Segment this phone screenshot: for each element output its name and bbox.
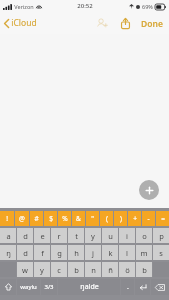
button[interactable]: p [153,228,169,243]
staticText: Verizon [14,3,34,10]
button[interactable]: + [128,211,141,226]
button[interactable]: ö [119,262,135,277]
button[interactable]: waylu [17,279,40,295]
button[interactable]: ! [0,211,14,226]
staticText: ñ [108,265,113,275]
button[interactable]: s [153,245,169,260]
button[interactable]: y [34,262,50,277]
button[interactable]: ) [114,211,127,226]
staticText: % [62,214,68,223]
button[interactable]: Shift [0,279,16,295]
staticText: 20:52 [77,2,93,10]
staticText: r [57,231,61,241]
staticText: w [22,265,28,275]
button[interactable]: m [136,245,152,260]
button[interactable]: = [156,211,169,226]
staticText: d [23,248,28,258]
staticText: 3/3 [44,283,54,291]
button[interactable]: & [72,211,85,226]
button[interactable]: " [86,211,99,226]
staticText: j [92,248,94,258]
button[interactable]: $ [44,211,57,226]
staticText: y [40,265,44,275]
button[interactable]: Add [139,180,159,200]
staticText: Done [141,18,163,30]
button[interactable]: h [68,245,84,260]
button[interactable]: w [17,262,33,277]
staticText: $ [49,214,53,223]
staticText: ) [120,214,122,223]
staticText: e [40,231,45,241]
staticText: f [41,248,44,258]
button[interactable]: c [51,262,67,277]
staticText: t [75,231,78,241]
button[interactable]: i [119,228,135,243]
button[interactable]: b [136,262,152,277]
button[interactable]: iCloud [0,14,43,32]
button[interactable]: % [58,211,71,226]
button[interactable]: ŋ [0,245,16,260]
staticText: = [161,214,165,223]
button[interactable]: n [85,262,101,277]
staticText: h [74,248,79,258]
staticText: - [147,214,150,223]
staticText: k [108,248,113,258]
staticText: ( [106,214,108,223]
staticText: ŋ [6,248,11,258]
staticText: iCloud [11,17,37,29]
button[interactable]: f [34,245,50,260]
button[interactable]: t [68,228,84,243]
staticText: 69% [142,3,153,10]
button[interactable]: d [17,228,33,243]
staticText: ŋalde [80,282,99,292]
staticText: o [142,231,147,241]
staticText: @ [19,214,25,223]
staticText: n [91,265,96,275]
staticText: & [76,214,81,223]
staticText: l [126,248,128,258]
button[interactable]: g [51,245,67,260]
button[interactable]: ŋalde [58,279,120,295]
staticText: c [57,265,61,275]
staticText: m [140,248,148,258]
button[interactable]: ( [100,211,113,226]
button[interactable]: o [136,228,152,243]
button[interactable]: Share [117,14,134,33]
button[interactable]: j [85,245,101,260]
button[interactable]: 3/3 [41,279,57,295]
button[interactable]: # [30,211,43,226]
staticText: y [91,231,95,241]
button[interactable]: y [85,228,101,243]
staticText: # [34,214,39,223]
button[interactable]: l [119,245,135,260]
button[interactable]: r [51,228,67,243]
button[interactable]: ñ [102,262,118,277]
button[interactable]: . [121,279,134,295]
button[interactable]: Enter [135,279,150,295]
button[interactable]: Done [139,15,165,33]
button[interactable]: k [102,245,118,260]
staticText: " [91,214,94,223]
staticText: b [74,265,79,275]
button[interactable]: @ [15,211,29,226]
button[interactable]: e [34,228,50,243]
button[interactable]: b [68,262,84,277]
staticText: g [57,248,62,258]
button[interactable]: Delete [151,279,169,295]
staticText: d [23,231,28,241]
staticText: b [142,265,147,275]
staticText: a [6,231,11,241]
button[interactable]: u [102,228,118,243]
button[interactable]: - [142,211,155,226]
button[interactable]: d [17,245,33,260]
button[interactable]: a [0,228,16,243]
staticText: u [108,231,113,241]
button[interactable]: Add person [93,14,112,33]
staticText: p [159,231,164,241]
staticText: ö [125,265,130,275]
staticText: waylu [20,283,37,291]
staticText: . [127,282,129,292]
staticText: + [133,214,137,223]
